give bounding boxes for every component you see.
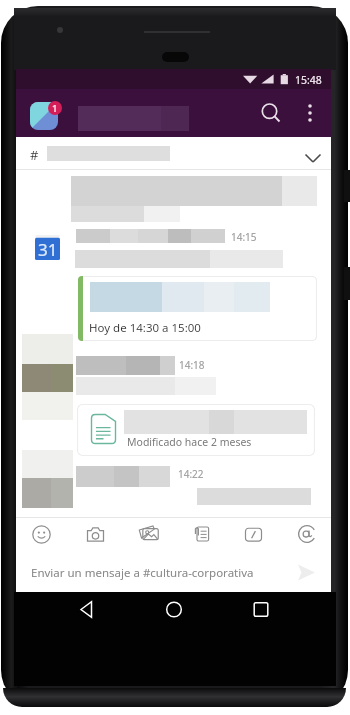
button[interactable]: Camera	[80, 519, 110, 549]
staticText: 15:48	[295, 73, 322, 87]
staticText: 14:22	[178, 467, 204, 481]
staticText: 14:18	[179, 358, 205, 372]
staticText: 1	[52, 102, 58, 115]
button[interactable]: #	[16, 137, 331, 169]
button[interactable]: Photos	[134, 519, 164, 549]
staticText: #	[30, 146, 39, 164]
staticText: Modificado hace 2 meses	[127, 435, 252, 449]
staticText: 31	[38, 238, 58, 261]
button[interactable]: Slash commands	[238, 519, 268, 549]
button[interactable]: Hoy de 14:30 a 15:00	[78, 276, 317, 341]
button[interactable]: Search	[256, 98, 286, 128]
button[interactable]: More options	[295, 98, 325, 128]
staticText: 14:15	[231, 230, 257, 244]
button[interactable]: Attach file	[186, 519, 216, 549]
staticText: Enviar un mensaje a #cultura-corporativa	[31, 565, 254, 581]
button[interactable]: Modificado hace 2 meses	[77, 404, 315, 456]
button[interactable]: Enviar un mensaje a #cultura-corporativa	[16, 552, 331, 592]
staticText: Hoy de 14:30 a 15:00	[89, 320, 201, 336]
button[interactable]: Workspace	[26, 97, 62, 131]
button[interactable]: Emoji	[26, 519, 56, 549]
button[interactable]: Mention someone	[292, 519, 322, 549]
